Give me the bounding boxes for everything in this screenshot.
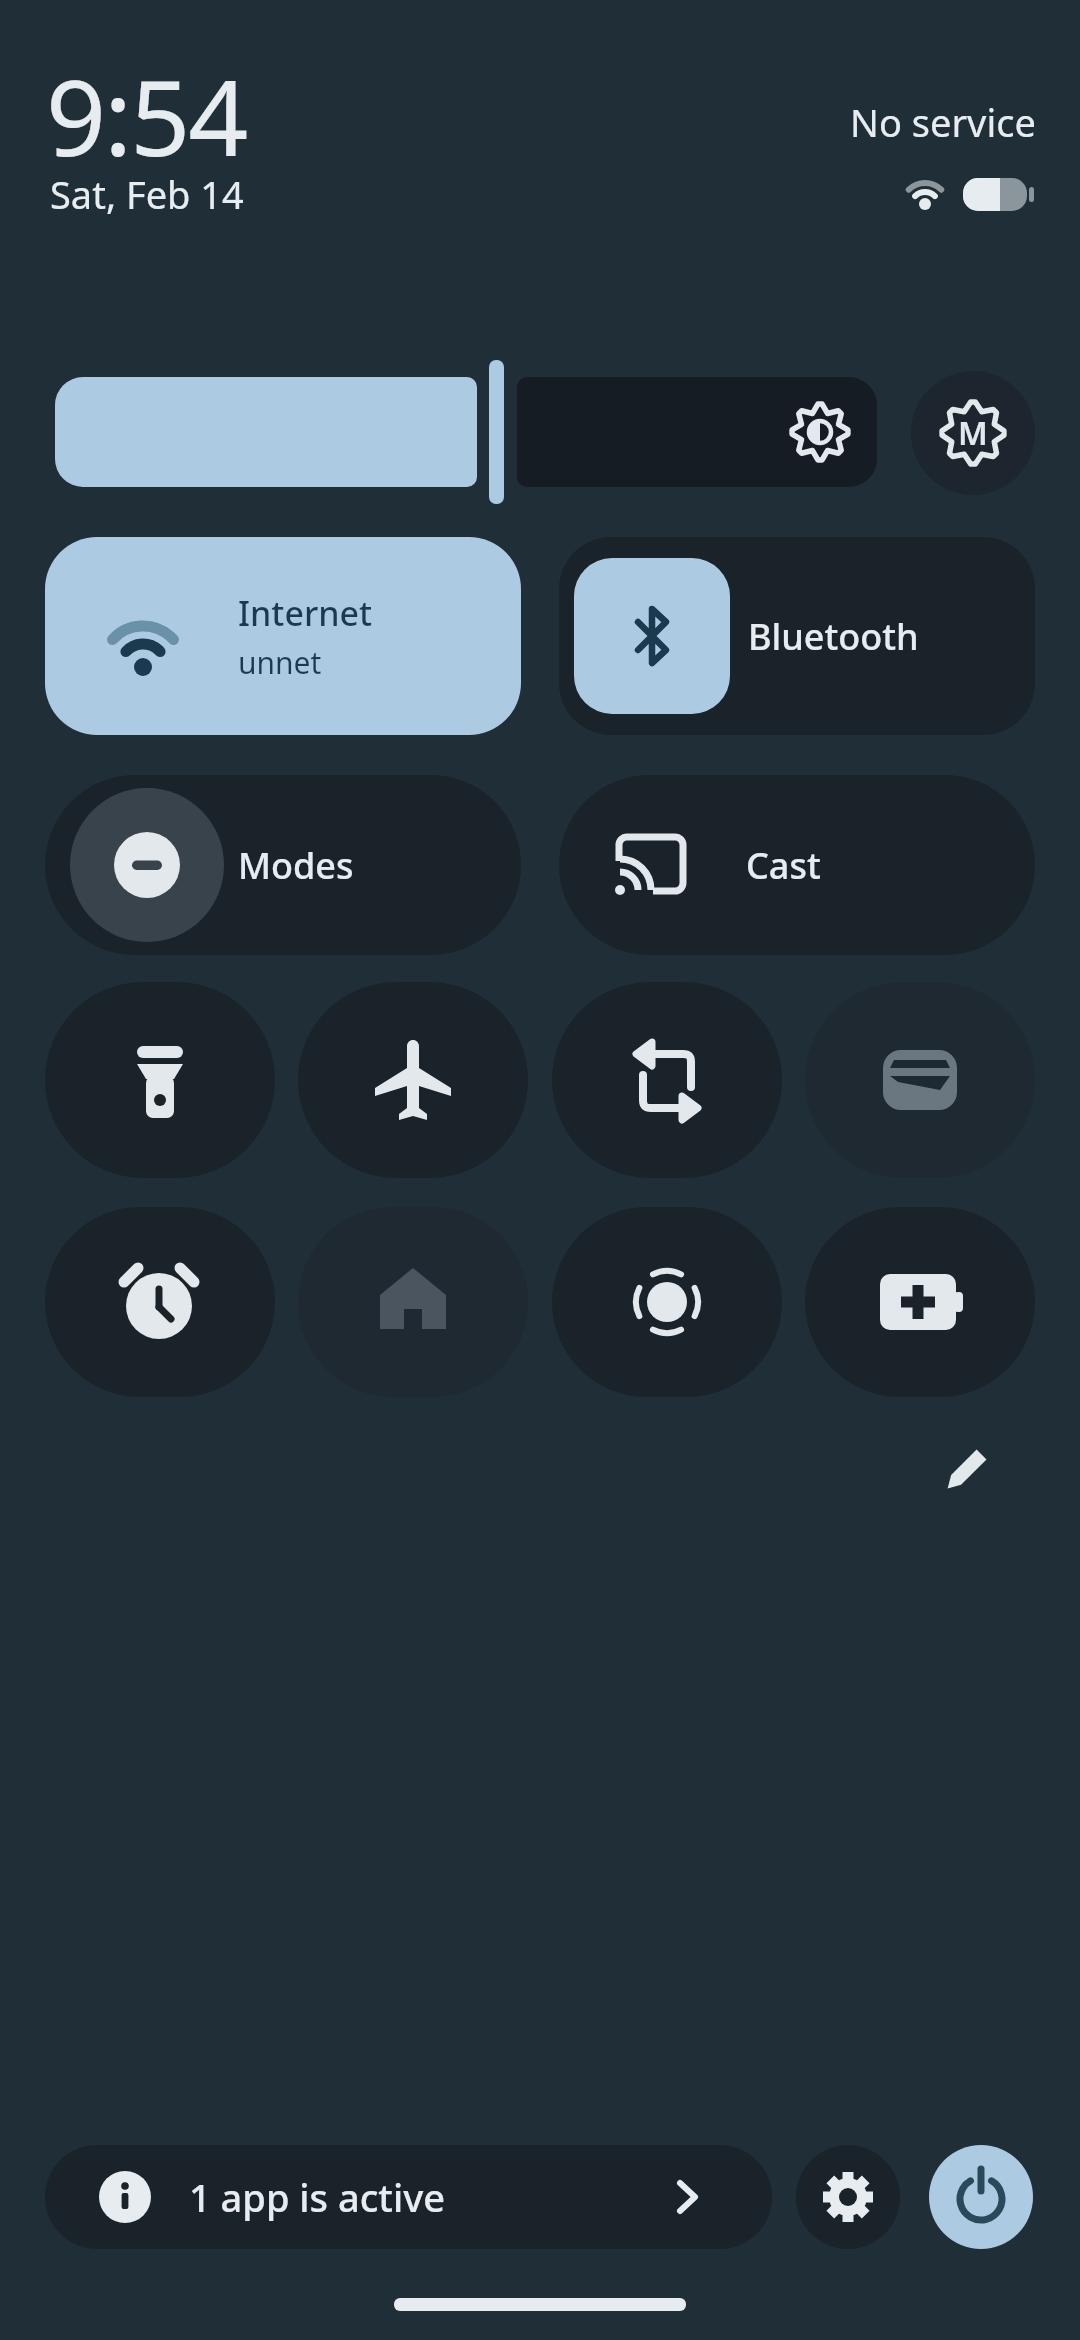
button[interactable]: Modes	[45, 775, 521, 955]
button[interactable]	[552, 982, 782, 1178]
button[interactable]	[805, 982, 1035, 1178]
staticText: No service	[850, 96, 1036, 148]
staticText: Bluetooth	[748, 612, 919, 661]
button[interactable]	[552, 1207, 782, 1397]
button[interactable]	[55, 377, 477, 487]
button[interactable]	[796, 2145, 900, 2249]
staticText: M	[958, 411, 988, 455]
button[interactable]: Bluetooth	[559, 537, 1035, 735]
button[interactable]: Internet	[45, 537, 521, 735]
button[interactable]	[298, 982, 528, 1178]
staticText: Cast	[746, 841, 821, 890]
button[interactable]	[805, 1207, 1035, 1397]
staticText: 9:54	[46, 44, 247, 187]
button[interactable]	[45, 1207, 275, 1397]
staticText: 1 app is active	[189, 2171, 446, 2223]
button[interactable]: Cast	[559, 775, 1035, 955]
staticText: Modes	[238, 841, 354, 890]
staticText: Internet	[238, 590, 373, 636]
button[interactable]	[929, 2145, 1033, 2249]
button[interactable]	[298, 1207, 528, 1397]
button[interactable]: M	[911, 371, 1035, 495]
button[interactable]: 1 app is active	[45, 2145, 772, 2249]
staticText: Sat, Feb 14	[50, 168, 244, 220]
button[interactable]	[45, 982, 275, 1178]
staticText: unnet	[238, 642, 322, 683]
